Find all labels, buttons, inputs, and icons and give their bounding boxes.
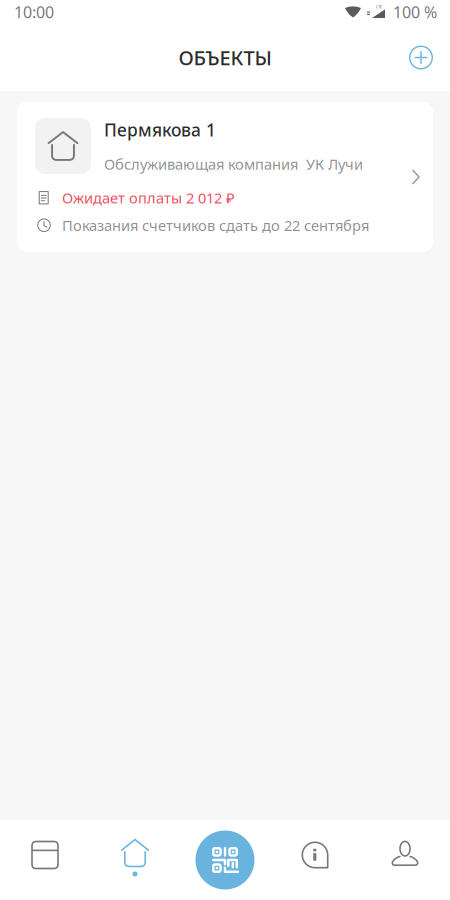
- staticText: 10:00: [14, 1, 54, 23]
- button[interactable]: Информация: [270, 820, 360, 900]
- staticText: Обслуживающая компания УК Лучи: [104, 154, 363, 174]
- staticText: Пермякова 1: [104, 118, 216, 141]
- staticText: 100 %: [393, 1, 437, 23]
- staticText: LTE: [376, 4, 382, 9]
- staticText: Показания счетчиков сдать до 22 сентября: [62, 215, 369, 235]
- staticText: ОБЪЕКТЫ: [178, 44, 271, 71]
- button[interactable]: Платежи: [0, 820, 90, 900]
- button[interactable]: Сканировать QR-код: [180, 820, 270, 900]
- button[interactable]: Объекты: [90, 820, 180, 900]
- staticText: Ожидает оплаты 2 012 ₽: [62, 188, 235, 207]
- button[interactable]: Пермякова 1: [17, 102, 433, 252]
- button[interactable]: Профиль: [360, 820, 450, 900]
- button[interactable]: Добавить объект: [397, 33, 445, 81]
